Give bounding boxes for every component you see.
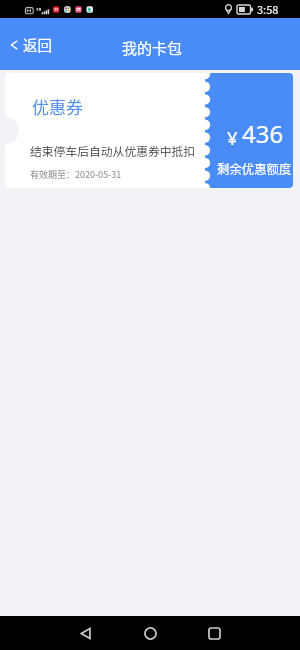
- button[interactable]: 优惠券: [5, 73, 293, 188]
- staticText: 优惠券: [32, 94, 83, 119]
- staticText: 返回: [23, 34, 52, 55]
- button[interactable]: 返回: [0, 26, 64, 63]
- staticText: 我的卡包: [122, 37, 183, 59]
- button[interactable]: Back: [64, 616, 107, 650]
- staticText: 有效期至：2020-05-31: [30, 168, 122, 181]
- staticText: 结束停车后自动从优惠券中抵扣: [30, 142, 196, 159]
- button[interactable]: Recents: [193, 616, 236, 650]
- staticText: 剩余优惠额度: [217, 160, 292, 178]
- staticText: ¥: [227, 125, 238, 150]
- staticText: 3:58: [257, 1, 279, 17]
- staticText: 436: [242, 117, 284, 150]
- button[interactable]: Home: [129, 616, 172, 650]
